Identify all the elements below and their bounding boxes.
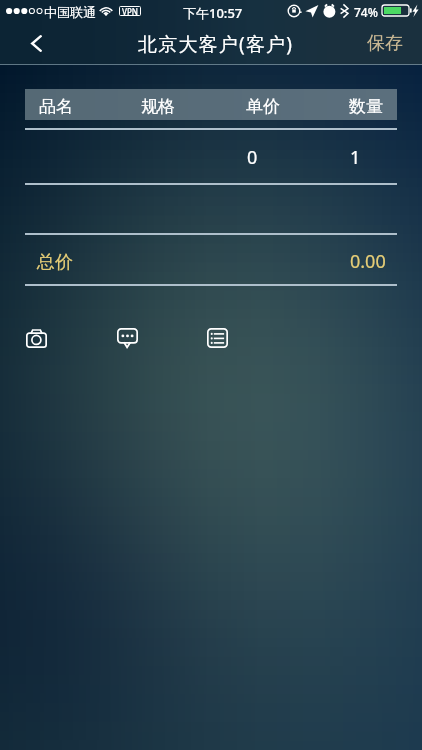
staticText: 单价 — [246, 96, 280, 117]
staticText: 北京大客户(客户) — [138, 31, 294, 57]
button[interactable]: 保存 — [353, 22, 422, 65]
button[interactable]: Comments — [104, 315, 150, 361]
staticText: 品名 — [39, 96, 73, 117]
button[interactable]: Back — [0, 22, 62, 65]
staticText: 0.00 — [350, 249, 386, 274]
staticText: 数量 — [349, 96, 383, 117]
button[interactable]: List — [194, 315, 240, 361]
staticText: 0 — [247, 145, 258, 170]
button[interactable]: Camera — [13, 315, 59, 361]
staticText: VPN — [122, 6, 139, 16]
staticText: 规格 — [141, 96, 175, 117]
staticText: 74% — [354, 4, 378, 20]
staticText: 保存 — [367, 32, 403, 55]
staticText: 1 — [350, 145, 361, 170]
staticText: 中国联通 — [44, 4, 96, 20]
staticText: 总价 — [37, 251, 73, 274]
staticText: 下午10:57 — [183, 4, 243, 22]
